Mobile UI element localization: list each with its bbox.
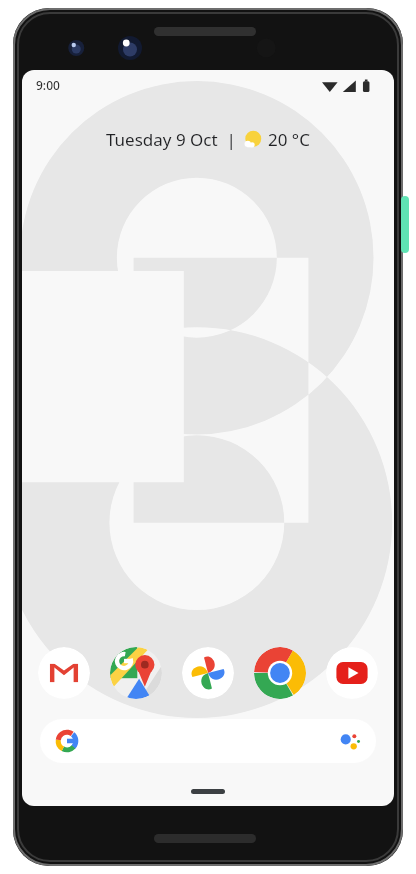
button[interactable]: Home — [191, 789, 225, 794]
button[interactable]: Search — [40, 719, 376, 763]
button[interactable]: Photos — [182, 647, 234, 699]
button[interactable]: Gmail — [38, 647, 90, 699]
staticText: Tuesday 9 Oct | — [106, 128, 236, 151]
button[interactable]: Tuesday 9 Oct | — [22, 128, 394, 151]
staticText: 9:00 — [36, 77, 60, 93]
button[interactable]: Maps — [110, 647, 162, 699]
staticText: 20 °C — [268, 128, 310, 151]
button[interactable]: Chrome — [254, 647, 306, 699]
button[interactable]: YouTube — [326, 647, 378, 699]
